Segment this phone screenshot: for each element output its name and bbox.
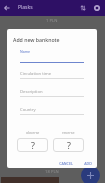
staticText: reverse <box>62 130 75 135</box>
button[interactable]: Settings <box>92 3 102 13</box>
button[interactable]: Back <box>2 3 12 13</box>
button[interactable]: Sort <box>78 3 88 13</box>
staticText: Name <box>20 49 31 54</box>
button[interactable]: ADD <box>80 160 95 167</box>
staticText: ? <box>31 139 35 151</box>
staticText: Country <box>20 107 36 113</box>
staticText: 18 PLN <box>45 169 59 175</box>
staticText: Description <box>20 89 43 95</box>
button[interactable]: reverse <box>53 130 84 152</box>
button[interactable] <box>20 68 84 79</box>
button[interactable]: obverse <box>17 130 48 152</box>
staticText: ? <box>67 139 71 151</box>
staticText: 1 PLN <box>46 18 58 24</box>
button[interactable]: Add banknote <box>81 166 100 183</box>
button[interactable] <box>20 104 84 115</box>
button[interactable] <box>20 86 84 97</box>
staticText: ADD <box>84 161 92 166</box>
button[interactable]: CANCEL <box>58 160 73 167</box>
staticText: obverse <box>26 130 40 135</box>
staticText: CANCEL <box>59 161 73 166</box>
staticText: Add new banknote <box>13 36 60 43</box>
staticText: Circulation time <box>20 71 52 77</box>
staticText: Plasks <box>18 4 33 11</box>
button[interactable] <box>20 46 84 62</box>
